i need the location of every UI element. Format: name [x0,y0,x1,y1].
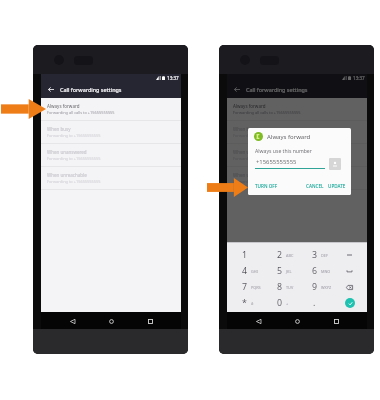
staticText: JKL [286,269,292,274]
staticText: 1 [242,249,248,261]
staticText: Forwarding all calls to +15655555555 [47,110,115,115]
staticText: MNO [321,269,331,274]
staticText: Forwarding all calls to +15655555555 [233,110,301,115]
staticText: 6 [312,265,318,277]
button[interactable]: 0 [262,295,297,311]
staticText: Call forwarding settings [60,86,122,93]
staticText: Always use this number [255,148,312,155]
staticText: WXYZ [321,285,332,290]
staticText: 0 [277,297,283,309]
staticText: When unreachable [47,172,87,178]
other: Pause [347,269,352,273]
staticText: 3 [312,249,318,261]
button[interactable]: Dash [332,247,367,263]
button[interactable]: 4 [227,263,262,279]
button[interactable]: Home [104,314,118,328]
staticText: Always forward [47,103,80,109]
staticText: 7 [242,281,248,293]
staticText: 8 [277,281,283,293]
staticText: 13:37 [353,75,365,81]
staticText: Forwarding to +15655555555 [233,179,287,184]
staticText: When busy [47,126,71,132]
button[interactable]: 1 [227,247,262,263]
button[interactable]: When unreachable [41,167,181,190]
staticText: . [313,297,316,309]
button[interactable]: . [297,295,332,311]
button[interactable]: Always forward [227,98,367,121]
staticText: When unanswered [233,149,273,155]
button[interactable]: Back [65,314,79,328]
staticText: Call forwarding settings [246,86,308,93]
button[interactable]: CANCEL [305,182,325,190]
staticText: +15655555555 [256,158,297,166]
button[interactable]: Pick contact [329,158,341,170]
staticText: + [286,301,289,306]
button[interactable]: When busy [41,121,181,144]
staticText: 2 [277,249,283,261]
button[interactable]: 7 [227,279,262,295]
button[interactable]: Recents [329,314,343,328]
button[interactable]: TURN OFF [254,182,279,190]
button[interactable]: When unreachable [227,167,367,190]
staticText: Forwarding to +15655555555 [47,179,101,184]
button[interactable]: When unanswered [41,144,181,167]
staticText: 4 [242,265,248,277]
staticText: Forwarding to +15655555555 [47,156,101,161]
staticText: CANCEL [306,183,324,189]
staticText: Forwarding to +15655555555 [47,133,101,138]
other: Backspace [346,285,353,290]
button[interactable]: UPDATE [327,182,347,190]
staticText: 13:37 [167,75,179,81]
staticText: Forwarding to +15655555555 [233,133,287,138]
button[interactable]: Recents [143,314,157,328]
other: Dash [347,253,352,257]
button[interactable]: Backspace [332,279,367,295]
staticText: 9 [312,281,318,293]
staticText: PQRS [251,285,261,290]
button[interactable]: Always forward [41,98,181,121]
staticText: DEF [321,253,328,258]
staticText: When busy [233,126,257,132]
button[interactable]: 5 [262,263,297,279]
button[interactable]: 8 [262,279,297,295]
staticText: Always forward [267,133,311,141]
button[interactable]: 9 [297,279,332,295]
button[interactable]: Back [251,314,265,328]
button[interactable]: Home [290,314,304,328]
button[interactable]: 3 [297,247,332,263]
button[interactable]: When busy [227,121,367,144]
staticText: # [251,301,254,306]
button[interactable]: When unanswered [227,144,367,167]
staticText: UPDATE [328,183,346,189]
staticText: ABC [286,253,294,258]
button[interactable]: 2 [262,247,297,263]
staticText: When unanswered [47,149,87,155]
button[interactable]: Navigate up [227,81,246,98]
staticText: When unreachable [233,172,273,178]
button[interactable]: 6 [297,263,332,279]
staticText: Forwarding to +15655555555 [233,156,287,161]
staticText: * [242,297,247,309]
button[interactable]: * [227,295,262,311]
button[interactable]: Pause [332,263,367,279]
staticText: GHI [251,269,258,274]
other: Done [345,298,355,308]
staticText: 5 [277,265,283,277]
button[interactable]: Done [332,295,367,311]
staticText: TURN OFF [255,183,278,189]
staticText: Always forward [233,103,266,109]
button[interactable]: Navigate up [41,81,60,98]
staticText: TUV [286,285,294,290]
